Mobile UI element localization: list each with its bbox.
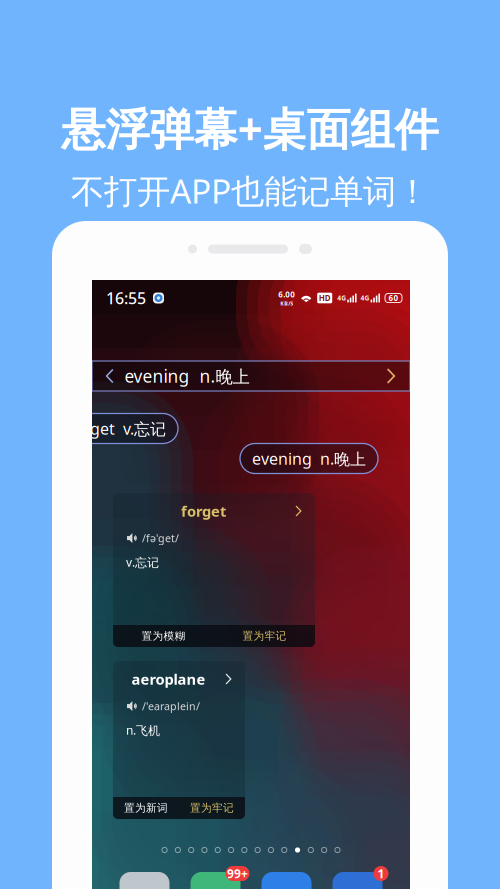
staticText: evening n.晚上 [252, 448, 366, 469]
staticText: aeroplane [131, 669, 205, 689]
staticText: 4G [337, 294, 346, 302]
staticText: v.忘记 [126, 554, 159, 570]
staticText: 99+ [227, 865, 248, 881]
button[interactable]: 置为模糊 [113, 625, 214, 647]
staticText: KB/S [280, 300, 293, 307]
staticText: HD [319, 293, 331, 303]
button[interactable]: Browser [261, 872, 311, 889]
staticText: 16:55 [106, 287, 146, 309]
staticText: 60 [388, 293, 398, 303]
staticText: 置为新词 [124, 801, 168, 814]
staticText: forget [181, 501, 226, 521]
staticText: 6.00 [278, 289, 295, 300]
staticText: 悬浮弹幕+桌面组件 [61, 99, 438, 157]
staticText: 置为模糊 [141, 629, 185, 642]
staticText: /fə'get/ [142, 531, 179, 545]
button[interactable]: 置为牢记 [214, 625, 315, 647]
staticText: evening n.晚上 [124, 364, 249, 387]
staticText: 1 [377, 865, 384, 881]
button[interactable]: 置为牢记 [179, 797, 245, 819]
button[interactable]: WeChat [190, 872, 240, 889]
staticText: /'earaplein/ [142, 699, 200, 713]
button[interactable]: Settings [119, 872, 169, 889]
button[interactable]: evening n.晚上 [92, 361, 410, 391]
staticText: rget v.忘记 [84, 418, 166, 439]
staticText: 不打开APP也能记单词！ [71, 168, 429, 213]
button[interactable]: Camera [332, 872, 382, 889]
staticText: n.飞机 [126, 722, 160, 738]
staticText: 置为牢记 [242, 629, 286, 642]
button[interactable]: 置为新词 [113, 797, 179, 819]
staticText: 置为牢记 [190, 801, 234, 814]
staticText: 4G [361, 294, 370, 302]
